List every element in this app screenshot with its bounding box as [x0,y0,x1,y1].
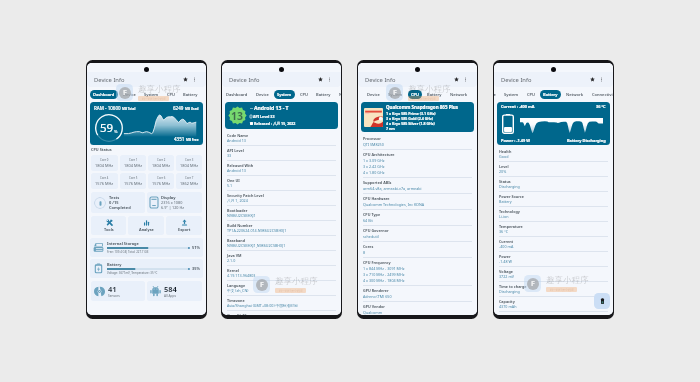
staticText: Supported ABIs [363,180,392,185]
button[interactable]: Baseband [225,236,338,251]
button[interactable]: Supported ABIs [361,178,474,194]
button[interactable]: Network [563,90,587,99]
button[interactable]: One UI [225,176,338,191]
button[interactable]: Qualcomm Snapdragon 865 Plus [361,102,474,132]
button[interactable]: Health [497,147,610,162]
staticText: Language [227,283,246,288]
button[interactable]: Tools [91,216,126,235]
button[interactable]: Bootloader [225,206,338,221]
button[interactable]: Kernel [225,266,338,281]
staticText: Kernel [227,268,239,273]
staticText: N [339,92,341,97]
button[interactable]: CPU [408,90,422,99]
staticText: 扫一扫打开小程序 [142,97,166,101]
button[interactable]: Internal Storage [90,238,203,257]
button[interactable]: N [336,90,341,99]
button[interactable]: Favorite [181,75,190,84]
staticText: Free: 109.4 GB, Total: 227.7 GB [107,250,149,254]
button[interactable]: Battery [313,90,334,99]
button[interactable]: System [141,90,162,99]
button[interactable]: GPU Renderer [361,286,474,302]
button[interactable]: Core 7 [176,173,202,189]
button[interactable]: Battery [594,293,610,309]
button[interactable]: 41 [91,281,145,301]
button[interactable]: CPU Hardware [361,194,474,210]
staticText: GPU Renderer [363,288,389,293]
button[interactable]: Connectivi [589,90,613,99]
button[interactable]: Tests [91,192,145,213]
button[interactable]: Core 4 [91,173,118,189]
button[interactable]: Power Source [497,192,610,207]
button[interactable]: CPU Governor [361,226,474,242]
button[interactable]: Build Number [225,221,338,236]
button[interactable]: Analyse [128,216,164,235]
button[interactable]: Favorite [452,75,461,84]
button[interactable]: CPU [524,90,538,99]
button[interactable]: Current : -400 mA [497,102,610,145]
button[interactable]: More options [597,75,606,84]
button[interactable]: API Level [225,146,338,161]
button[interactable]: OpenGL ES [225,311,338,315]
button[interactable]: Language [225,281,338,296]
button[interactable]: Device [120,90,139,99]
button[interactable]: Capacity [497,297,610,312]
button[interactable]: More options [325,75,334,84]
button[interactable]: Favorite [316,75,325,84]
button[interactable]: Cores [361,242,474,258]
staticText: 13 [231,109,244,123]
button[interactable]: Battery [90,259,203,278]
button[interactable]: Status [497,177,610,192]
button[interactable]: GPU Vendor [361,302,474,315]
button[interactable]: Battery [180,90,201,99]
button[interactable]: CPU Architecture [361,150,474,178]
button[interactable]: Export [166,216,202,235]
button[interactable]: System [385,90,406,99]
button[interactable]: Timezone [225,296,338,311]
button[interactable]: CPU Frequency [361,258,474,286]
button[interactable]: Device [494,90,499,99]
staticText: 3722 mV [499,274,515,279]
button[interactable]: CPU Type [361,210,474,226]
button[interactable]: Level [497,162,610,177]
button[interactable]: Dashboard [223,90,251,99]
button[interactable]: Core 2 [148,155,174,171]
button[interactable]: Network [447,90,471,99]
button[interactable]: More options [190,75,199,84]
button[interactable]: Temperature [497,222,610,237]
button[interactable]: CPU [297,90,311,99]
staticText: Security Patch Level [227,193,264,198]
button[interactable]: Processor [361,134,474,150]
button[interactable]: Core 0 [91,155,118,171]
button[interactable]: Current [497,237,610,252]
button[interactable]: Core 3 [176,155,202,171]
button[interactable]: More options [461,75,470,84]
button[interactable]: Java VM [225,251,338,266]
button[interactable]: Core 5 [120,173,146,189]
button[interactable]: 13 [225,102,338,129]
button[interactable]: Technology [497,207,610,222]
button[interactable]: Released With [225,161,338,176]
button[interactable]: Dashboard [90,90,118,99]
button[interactable]: Favorite [588,75,597,84]
button[interactable]: Device [364,90,383,99]
button[interactable]: Power [497,252,610,267]
staticText: Android 13 - T [254,105,289,112]
button[interactable]: Core 6 [148,173,174,189]
button[interactable]: System [274,90,295,99]
button[interactable]: Core 1 [120,155,146,171]
staticText: 1804 MHz [124,163,143,168]
button[interactable]: RAM - 10600 [90,102,203,145]
button[interactable]: Security Patch Level [225,191,338,206]
button[interactable]: Display [147,192,202,213]
button[interactable]: Time to charge [497,282,610,297]
button[interactable]: System [501,90,522,99]
staticText: 64 Bit [363,218,373,223]
button[interactable]: Device [253,90,272,99]
button[interactable]: Voltage [497,267,610,282]
button[interactable]: CPU [164,90,178,99]
button[interactable]: Battery [424,90,445,99]
button[interactable]: Code Name [225,131,338,146]
button[interactable]: Battery [540,90,561,99]
button[interactable]: 584 [147,281,202,301]
